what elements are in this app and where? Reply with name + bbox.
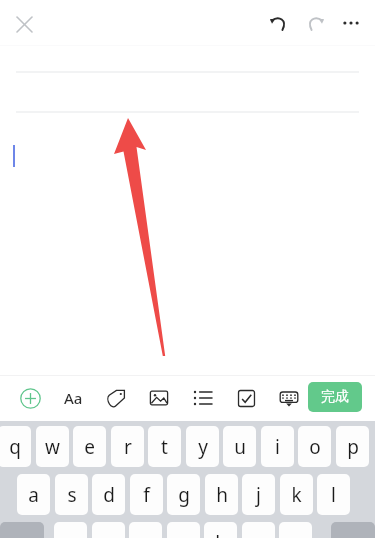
- button[interactable]: Undo: [261, 6, 295, 40]
- staticText: 完成: [321, 388, 349, 406]
- button[interactable]: n: [242, 522, 275, 538]
- button[interactable]: e: [73, 426, 106, 467]
- button[interactable]: j: [242, 474, 275, 515]
- button[interactable]: p: [336, 426, 369, 467]
- button[interactable]: b: [204, 522, 237, 538]
- staticText: p: [347, 434, 359, 460]
- staticText: y: [198, 434, 208, 460]
- button[interactable]: w: [36, 426, 69, 467]
- other: Add: [20, 388, 41, 409]
- staticText: f: [143, 482, 150, 508]
- staticText: h: [216, 482, 228, 508]
- button[interactable]: s: [55, 474, 88, 515]
- button[interactable]: Close: [8, 8, 40, 40]
- other: Tag: [106, 388, 126, 408]
- staticText: t: [161, 434, 168, 460]
- staticText: k: [291, 482, 302, 508]
- button[interactable]: Redo: [299, 6, 333, 40]
- button[interactable]: f: [130, 474, 163, 515]
- button[interactable]: Tag: [99, 381, 133, 415]
- button[interactable]: Insert image: [142, 381, 176, 415]
- staticText: i: [275, 434, 280, 460]
- button[interactable]: u: [223, 426, 256, 467]
- button[interactable]: Keyboard: [272, 381, 306, 415]
- button[interactable]: r: [111, 426, 144, 467]
- staticText: l: [331, 482, 336, 508]
- button[interactable]: Aa: [56, 381, 90, 415]
- other: Bulleted list: [193, 388, 213, 408]
- staticText: r: [124, 434, 132, 460]
- button[interactable]: Bulleted list: [186, 381, 220, 415]
- button[interactable]: Checklist: [229, 381, 263, 415]
- button[interactable]: z: [54, 522, 87, 538]
- button[interactable]: Shift: [0, 522, 44, 538]
- button[interactable]: h: [205, 474, 238, 515]
- button[interactable]: d: [92, 474, 125, 515]
- button[interactable]: g: [167, 474, 200, 515]
- button[interactable]: More options: [334, 6, 368, 40]
- staticText: a: [28, 482, 39, 508]
- button[interactable]: q: [0, 426, 31, 467]
- button[interactable]: i: [261, 426, 294, 467]
- button[interactable]: o: [298, 426, 331, 467]
- button[interactable]: y: [186, 426, 219, 467]
- staticText: u: [234, 434, 246, 460]
- other: Keyboard: [279, 388, 299, 408]
- staticText: w: [45, 434, 60, 460]
- other: Checklist: [237, 389, 256, 408]
- button[interactable]: 完成: [308, 382, 362, 412]
- button[interactable]: m: [279, 522, 312, 538]
- staticText: e: [84, 434, 95, 460]
- button[interactable]: l: [317, 474, 350, 515]
- staticText: d: [103, 482, 115, 508]
- button[interactable]: Backspace: [331, 522, 375, 538]
- button[interactable]: v: [167, 522, 200, 538]
- staticText: o: [309, 434, 321, 460]
- staticText: b: [215, 530, 227, 538]
- staticText: j: [256, 482, 261, 508]
- button[interactable]: Add: [13, 381, 47, 415]
- staticText: g: [178, 482, 190, 508]
- button[interactable]: k: [280, 474, 313, 515]
- button[interactable]: c: [129, 522, 162, 538]
- staticText: q: [9, 434, 21, 460]
- other: Insert image: [149, 388, 169, 408]
- button[interactable]: t: [148, 426, 181, 467]
- button[interactable]: x: [92, 522, 125, 538]
- staticText: s: [67, 482, 77, 508]
- button[interactable]: a: [17, 474, 50, 515]
- staticText: Aa: [64, 388, 83, 408]
